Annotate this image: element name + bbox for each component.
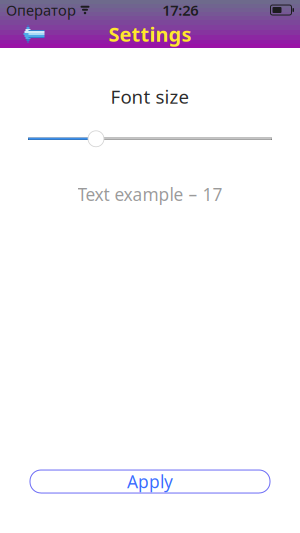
button[interactable]: Apply: [30, 470, 270, 493]
staticText: 17:26: [162, 0, 198, 20]
staticText: Font size: [110, 84, 189, 109]
button[interactable]: Back: [0, 20, 52, 48]
staticText: Оператор: [6, 0, 76, 20]
staticText: Settings: [108, 21, 191, 47]
staticText: Apply: [127, 470, 173, 493]
staticText: Text example – 17: [77, 183, 222, 206]
